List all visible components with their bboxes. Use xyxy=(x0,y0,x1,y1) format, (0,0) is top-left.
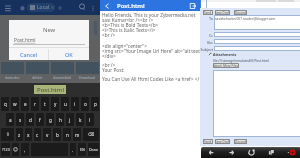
button[interactable]: Refresh xyxy=(241,147,261,158)
button[interactable]: v xyxy=(43,128,51,141)
staticText: EN xyxy=(80,147,85,152)
staticText: Cancel xyxy=(20,51,38,58)
button[interactable]: Opera menu xyxy=(281,147,300,158)
staticText: ?123 xyxy=(2,147,10,152)
staticText: You Can Use All Html Codes Like <a href>… xyxy=(102,76,202,82)
staticText: l xyxy=(89,117,91,123)
staticText: k xyxy=(79,117,82,123)
button[interactable]: Tabs xyxy=(261,147,281,158)
button[interactable]: i xyxy=(71,97,79,111)
staticText: New xyxy=(43,26,56,34)
staticText: Post.html xyxy=(117,2,145,10)
button[interactable]: , xyxy=(21,143,29,156)
staticText: u xyxy=(64,101,67,107)
button[interactable]: Exit xyxy=(189,2,197,10)
button[interactable]: u xyxy=(61,97,69,111)
button[interactable]: o xyxy=(81,97,89,111)
button[interactable]: Back xyxy=(103,2,111,10)
button[interactable]: Cancel xyxy=(9,49,48,60)
button[interactable]: g xyxy=(46,113,54,126)
button[interactable]: k xyxy=(76,113,84,126)
staticText: o xyxy=(84,101,87,107)
button[interactable]: More options xyxy=(89,4,97,12)
staticText: , xyxy=(24,147,26,153)
button[interactable]: ⇧ xyxy=(1,128,14,141)
staticText: Attach More Files xyxy=(213,64,239,68)
button[interactable]: e xyxy=(21,97,29,111)
staticText: Hello Friends, This is your Zybermedia.n… xyxy=(102,12,202,18)
button[interactable]: Attach More Files xyxy=(213,63,239,68)
staticText: r xyxy=(34,101,36,107)
button[interactable]: Save Draft xyxy=(215,10,230,15)
staticText: q xyxy=(4,101,7,107)
button[interactable]: d xyxy=(26,113,34,126)
staticText: sasithehacker007.reader@blogger.com xyxy=(215,16,276,20)
staticText: Attachments xyxy=(213,52,237,57)
staticText: Save Draft xyxy=(215,11,230,15)
button[interactable]: Discard xyxy=(234,10,247,15)
button[interactable]: OK xyxy=(49,49,89,60)
staticText: x xyxy=(27,132,30,138)
button[interactable]: Home xyxy=(19,4,26,11)
button[interactable]: Send xyxy=(203,139,213,144)
staticText: <img src="Your Image Url Here" alt="alt … xyxy=(102,48,202,54)
staticText: i xyxy=(74,101,76,107)
button[interactable]: EN xyxy=(78,143,86,156)
staticText: t xyxy=(44,101,46,107)
button[interactable]: Menu xyxy=(4,4,12,12)
button[interactable]: s xyxy=(16,113,24,126)
button[interactable]: ?123 xyxy=(1,143,10,156)
button[interactable]: l xyxy=(86,113,94,126)
button[interactable]: t xyxy=(41,97,49,111)
staticText: Bcc xyxy=(200,40,213,45)
button[interactable]: h xyxy=(56,113,64,126)
button[interactable]: Post.html xyxy=(34,85,66,94)
button[interactable]: a xyxy=(6,113,14,126)
button[interactable]: Search xyxy=(78,3,87,12)
staticText: Send xyxy=(204,11,212,15)
button[interactable]: Done xyxy=(88,143,99,156)
staticText: j xyxy=(69,117,71,123)
button[interactable]: ⌫ xyxy=(83,128,99,141)
staticText: dotacdec xyxy=(5,75,20,80)
button[interactable]: Back xyxy=(201,147,221,158)
staticText: <b>This is Bold Texts</b> xyxy=(102,22,159,28)
button[interactable]: z xyxy=(16,128,23,141)
staticText: e xyxy=(24,101,27,107)
staticText: Discard xyxy=(235,140,246,144)
button[interactable]: c xyxy=(34,128,41,141)
staticText: Done xyxy=(89,147,99,152)
button[interactable]: y xyxy=(51,97,59,111)
button[interactable]: q xyxy=(1,97,9,111)
staticText: dtfdcit xyxy=(32,75,43,80)
button[interactable]: . xyxy=(70,143,76,156)
staticText: Save Draft xyxy=(215,140,230,144)
staticText: file:///storage/emulated/0/Post.html xyxy=(213,58,270,62)
button[interactable]: m xyxy=(73,128,81,141)
button[interactable]: x xyxy=(25,128,32,141)
button[interactable]: Local xyxy=(27,3,55,12)
staticText: Post.html xyxy=(14,37,36,44)
button[interactable]: b xyxy=(53,128,61,141)
staticText: To xyxy=(200,16,213,21)
button[interactable]: Discard xyxy=(234,139,247,144)
staticText: y xyxy=(54,101,57,107)
staticText: h xyxy=(59,117,62,123)
button[interactable]: Send xyxy=(203,10,213,15)
button[interactable]: p xyxy=(91,97,99,111)
staticText: sasi Kumar<br /><br /> xyxy=(102,17,154,23)
button[interactable]: f xyxy=(36,113,44,126)
button[interactable]: n xyxy=(63,128,71,141)
button[interactable]: ☺ xyxy=(12,143,19,156)
staticText: ⌫ xyxy=(88,132,95,137)
button[interactable]: w xyxy=(11,97,19,111)
button[interactable]: j xyxy=(66,113,74,126)
staticText: d xyxy=(29,117,32,123)
button[interactable]: Save Draft xyxy=(215,139,230,144)
button[interactable]: r xyxy=(31,97,39,111)
button[interactable]: Forward xyxy=(221,147,241,158)
staticText: Local xyxy=(37,4,50,11)
staticText: s xyxy=(19,117,22,123)
staticText: Post.html xyxy=(37,86,64,94)
